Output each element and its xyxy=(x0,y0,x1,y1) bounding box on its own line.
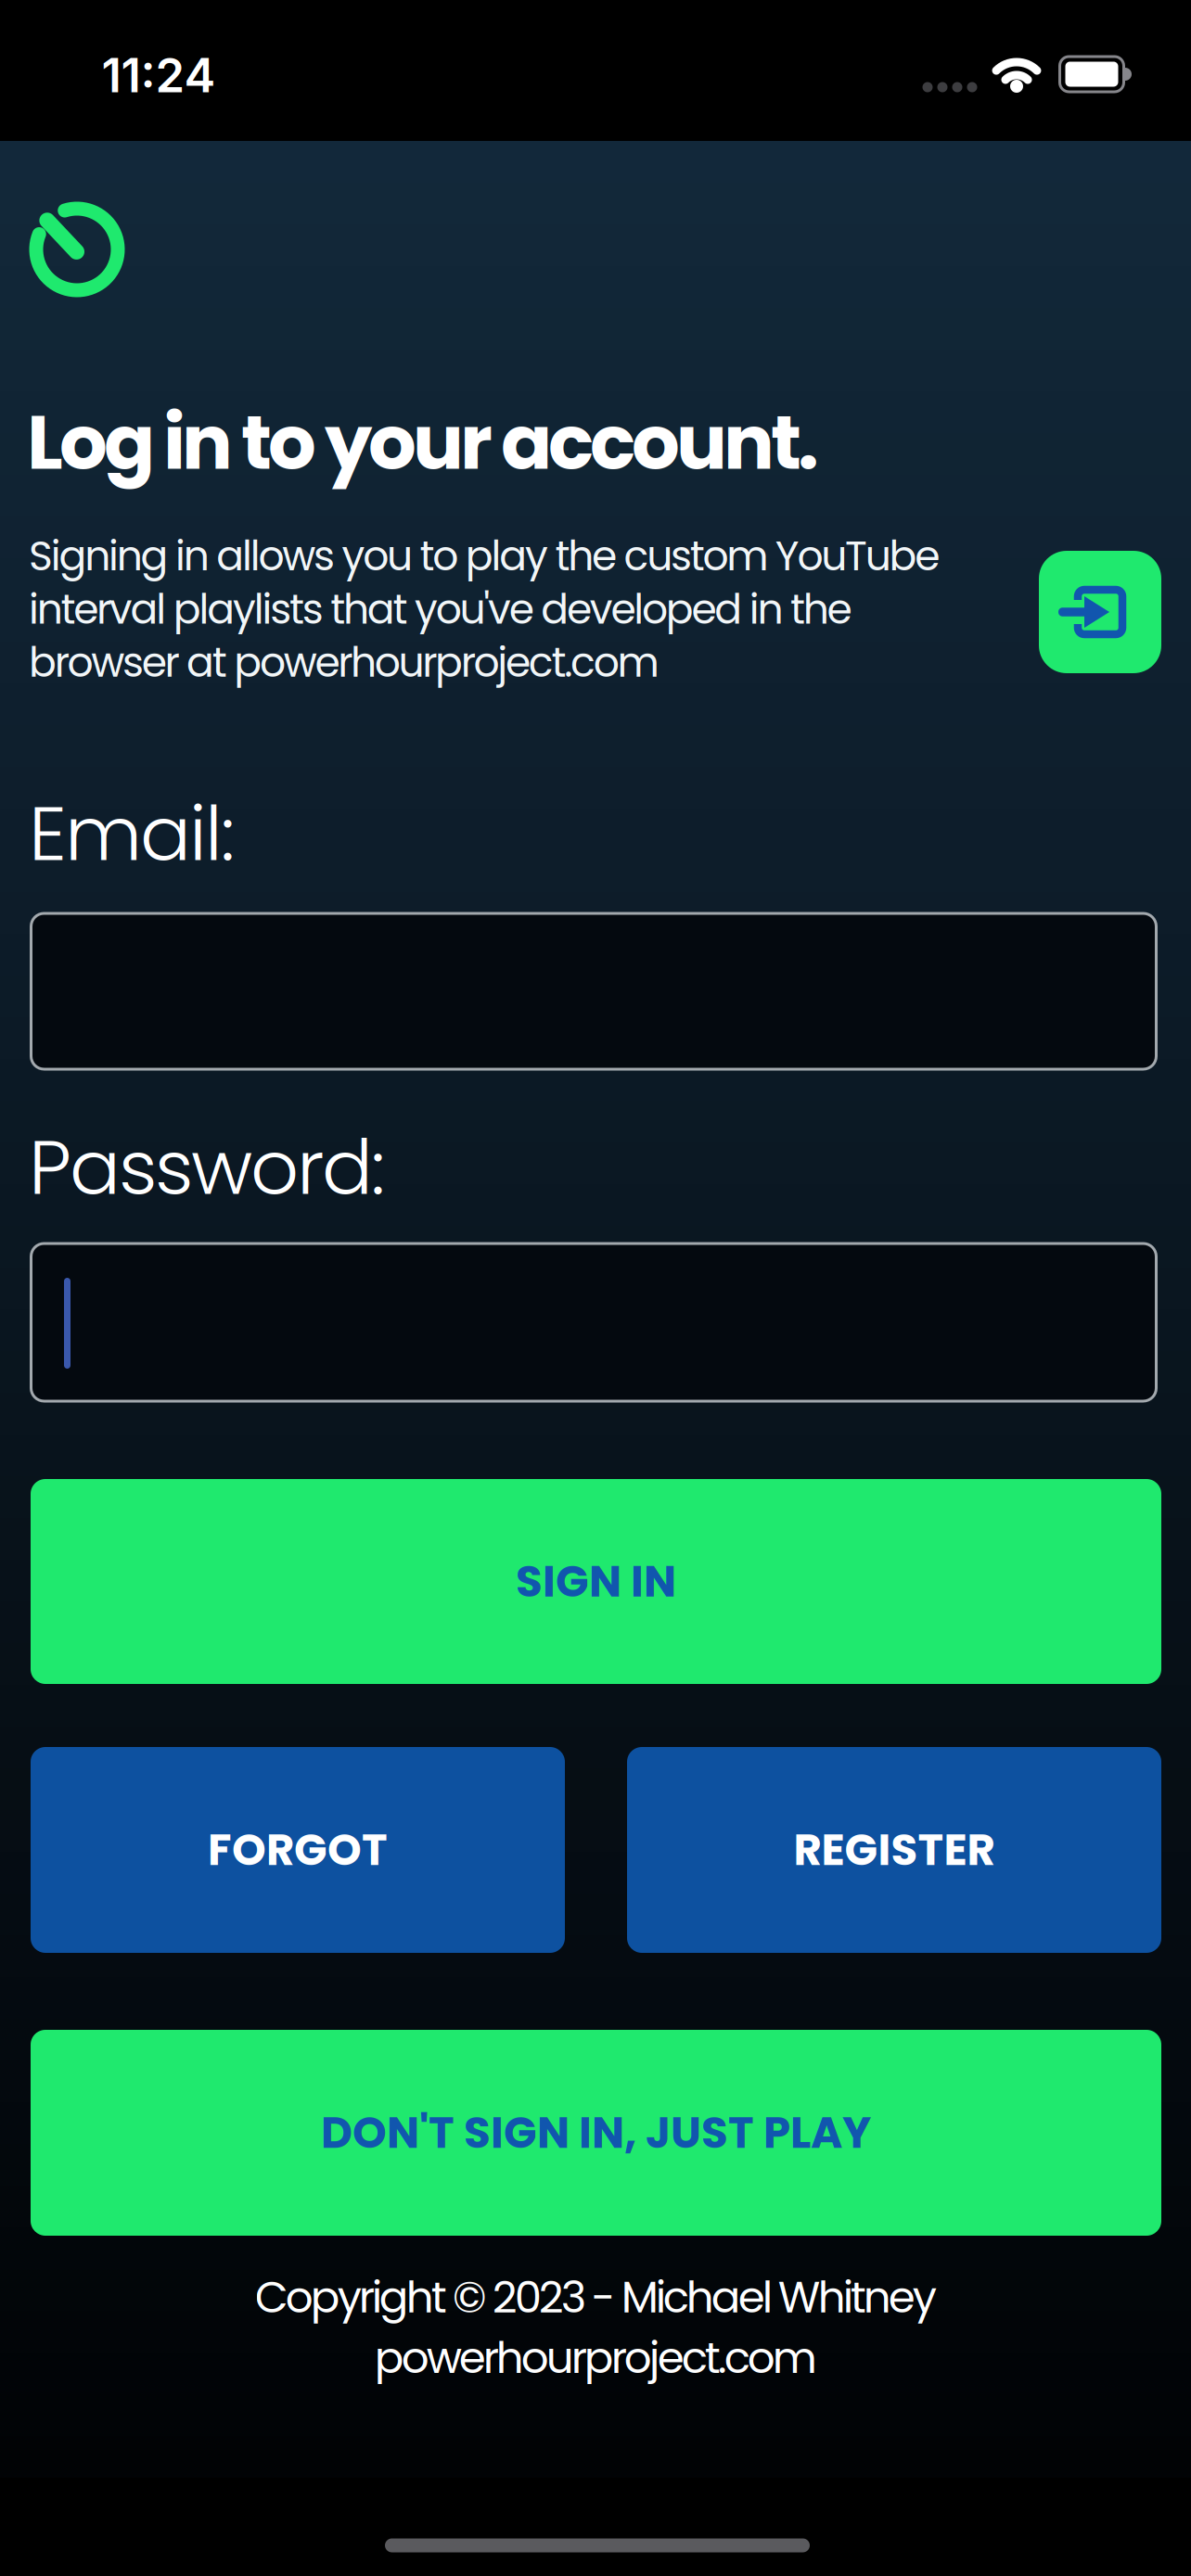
button[interactable]: SIGN IN xyxy=(31,1479,1161,1684)
staticText: 11:24 xyxy=(102,47,216,103)
staticText: FORGOT xyxy=(208,1820,388,1880)
staticText: SIGN IN xyxy=(516,1551,676,1612)
staticText: Email: xyxy=(29,781,235,886)
button[interactable]: DON'T SIGN IN, JUST PLAY xyxy=(31,2030,1161,2236)
staticText: DON'T SIGN IN, JUST PLAY xyxy=(321,2102,871,2163)
button[interactable] xyxy=(1039,551,1161,673)
staticText: REGISTER xyxy=(794,1820,995,1880)
button[interactable] xyxy=(31,1243,1156,1401)
staticText: Copyright © 2023 - Michael Whitney power… xyxy=(255,2267,936,2388)
button[interactable]: FORGOT xyxy=(31,1747,565,1953)
button[interactable] xyxy=(31,913,1156,1069)
staticText: Signing in allows you to play the custom… xyxy=(29,530,940,689)
button[interactable]: REGISTER xyxy=(627,1747,1161,1953)
staticText: Log in to your account. xyxy=(27,390,819,495)
staticText: Password: xyxy=(29,1115,385,1220)
